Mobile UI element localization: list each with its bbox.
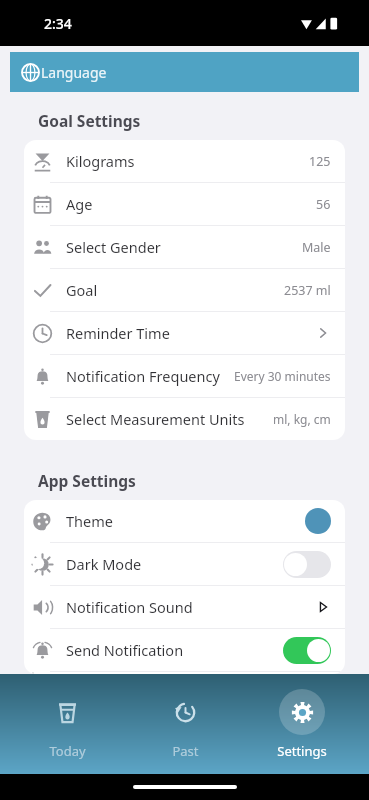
button[interactable]: Language <box>10 52 359 92</box>
staticText: Theme <box>66 511 113 531</box>
staticText: Kilograms <box>66 151 135 171</box>
staticText: Every 30 minutes <box>234 368 331 384</box>
staticText: App Settings <box>38 470 136 491</box>
button[interactable]: Dark Mode <box>24 543 345 585</box>
button[interactable]: Theme <box>24 500 345 542</box>
staticText: Goal <box>66 280 98 300</box>
staticText: Notification Sound <box>66 597 193 617</box>
other: Open reminder time <box>315 325 331 341</box>
button[interactable]: Today <box>17 683 117 766</box>
button[interactable]: Goal <box>24 269 345 311</box>
button[interactable]: Notification Sound <box>24 586 345 628</box>
button[interactable]: Past <box>135 683 235 766</box>
staticText: Today <box>49 742 86 760</box>
staticText: Past <box>172 742 199 760</box>
button[interactable]: Rate the App <box>24 672 345 674</box>
staticText: 56 <box>316 196 331 213</box>
staticText: Reminder Time <box>66 323 170 343</box>
staticText: Select Gender <box>66 237 161 257</box>
staticText: Send Notification <box>66 640 184 660</box>
staticText: 2537 ml <box>284 282 331 299</box>
button[interactable]: Settings <box>252 683 352 766</box>
staticText: ml, kg, cm <box>273 411 331 427</box>
button[interactable]: Age <box>24 183 345 225</box>
staticText: 125 <box>309 153 331 170</box>
other: Play notification sound <box>315 599 331 615</box>
staticText: Age <box>66 194 93 214</box>
staticText: Notification Frequency <box>66 366 220 386</box>
staticText: Dark Mode <box>66 554 142 574</box>
button[interactable]: Reminder Time <box>24 312 345 354</box>
button[interactable]: Notification Frequency <box>24 355 345 397</box>
staticText: Select Measurement Units <box>66 409 245 429</box>
staticText: Male <box>302 239 331 256</box>
button[interactable]: Send Notification <box>24 629 345 671</box>
staticText: 2:34 <box>44 14 72 33</box>
button[interactable]: Toggle off <box>283 551 331 578</box>
staticText: Goal Settings <box>38 110 141 131</box>
button[interactable]: Toggle on <box>283 637 331 664</box>
button[interactable]: Kilograms <box>24 140 345 182</box>
staticText: Settings <box>277 742 327 760</box>
staticText: Language <box>41 63 107 82</box>
button[interactable]: Select Measurement Units <box>24 398 345 440</box>
button[interactable]: Select Gender <box>24 226 345 268</box>
